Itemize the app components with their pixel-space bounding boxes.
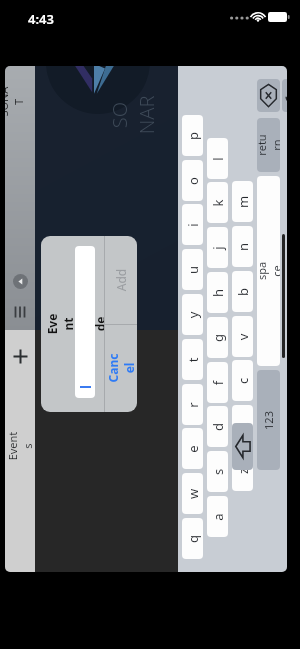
staticText: w bbox=[183, 488, 201, 499]
staticText: k bbox=[208, 199, 226, 206]
staticText: e bbox=[184, 445, 202, 453]
button[interactable]: space bbox=[257, 176, 280, 366]
staticText: return bbox=[257, 133, 280, 156]
button[interactable]: l bbox=[207, 138, 228, 179]
button[interactable]: Back bbox=[13, 274, 28, 289]
staticText: l bbox=[209, 157, 227, 161]
staticText: SONAT bbox=[5, 87, 44, 117]
staticText: 123 bbox=[261, 411, 276, 430]
button[interactable]: i bbox=[182, 204, 203, 245]
staticText: v bbox=[233, 333, 251, 340]
button[interactable]: n bbox=[232, 226, 253, 267]
staticText: f bbox=[208, 380, 226, 385]
staticText: b bbox=[234, 288, 252, 296]
button[interactable] bbox=[75, 246, 95, 398]
staticText: c bbox=[233, 377, 251, 384]
staticText: y bbox=[183, 311, 201, 318]
button[interactable]: v bbox=[232, 316, 253, 357]
button[interactable]: Hide keyboard bbox=[257, 79, 280, 112]
staticText: r bbox=[184, 402, 202, 408]
button[interactable]: Backspace bbox=[232, 423, 253, 470]
button[interactable]: x bbox=[232, 405, 253, 446]
staticText: n bbox=[233, 242, 251, 251]
staticText: o bbox=[184, 177, 202, 185]
button[interactable]: f bbox=[207, 362, 228, 403]
button[interactable]: Add bbox=[12, 348, 29, 365]
staticText: Events bbox=[5, 431, 35, 461]
button[interactable]: u bbox=[182, 249, 203, 290]
staticText: p bbox=[184, 132, 202, 140]
button[interactable]: g bbox=[207, 317, 228, 358]
staticText: i bbox=[184, 223, 202, 227]
button[interactable]: 123 bbox=[257, 370, 280, 470]
button[interactable]: s bbox=[207, 451, 228, 492]
staticText: q bbox=[184, 535, 202, 543]
staticText: j bbox=[209, 246, 227, 250]
button[interactable]: y bbox=[182, 294, 203, 335]
button[interactable]: z bbox=[232, 450, 253, 491]
button[interactable]: Add bbox=[104, 236, 137, 324]
button[interactable]: h bbox=[207, 272, 228, 313]
button[interactable]: a bbox=[207, 496, 228, 537]
staticText: SONAR bbox=[106, 95, 196, 135]
staticText: d bbox=[209, 423, 227, 431]
button[interactable]: j bbox=[207, 227, 228, 268]
staticText: Add bbox=[112, 268, 128, 291]
staticText: a bbox=[209, 513, 227, 521]
button[interactable]: m bbox=[232, 181, 253, 222]
staticText: x bbox=[233, 422, 251, 429]
button[interactable]: r bbox=[182, 384, 203, 425]
button[interactable]: p bbox=[182, 115, 203, 156]
button[interactable]: Dictation bbox=[282, 79, 287, 112]
button[interactable]: Events bbox=[5, 411, 35, 481]
staticText: s bbox=[208, 468, 226, 475]
button[interactable]: e bbox=[182, 428, 203, 469]
button[interactable]: q bbox=[182, 518, 203, 559]
button[interactable]: w bbox=[182, 473, 203, 514]
staticText: Enter Event Code bbox=[41, 313, 108, 335]
staticText: u bbox=[183, 265, 201, 274]
staticText: m bbox=[233, 195, 251, 208]
staticText: Cancel bbox=[104, 351, 136, 384]
button[interactable]: k bbox=[207, 182, 228, 223]
button[interactable]: Cancel bbox=[104, 324, 137, 412]
staticText: g bbox=[209, 334, 227, 342]
button[interactable]: o bbox=[182, 160, 203, 201]
staticText: h bbox=[208, 288, 226, 297]
staticText: space bbox=[257, 259, 280, 282]
button[interactable]: b bbox=[232, 271, 253, 312]
button[interactable]: d bbox=[207, 406, 228, 447]
staticText: t bbox=[183, 357, 201, 362]
button[interactable]: Menu bbox=[11, 302, 29, 322]
staticText: z bbox=[233, 467, 251, 474]
button[interactable]: t bbox=[182, 339, 203, 380]
staticText: 4:43 bbox=[28, 10, 54, 28]
button[interactable]: c bbox=[232, 360, 253, 401]
button[interactable]: return bbox=[257, 118, 280, 172]
